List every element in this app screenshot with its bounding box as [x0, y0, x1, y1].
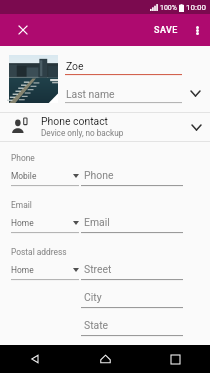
button[interactable]: SAVE — [145, 19, 184, 42]
button[interactable]: Mobile — [11, 168, 79, 187]
staticText: 100% — [160, 4, 177, 12]
staticText: Email — [11, 200, 32, 210]
button[interactable]: Change account — [187, 118, 205, 136]
button[interactable]: Home — [11, 262, 79, 281]
staticText: Postal address — [11, 247, 67, 257]
button[interactable]: Zoe — [65, 59, 182, 76]
button[interactable]: Email — [81, 215, 183, 234]
staticText: Last name — [66, 88, 115, 100]
button[interactable]: Phone contact — [0, 113, 210, 141]
button[interactable]: Phone — [81, 168, 183, 187]
staticText: Phone contact — [41, 115, 109, 127]
button[interactable]: Close — [10, 17, 36, 43]
staticText: Street — [84, 263, 112, 275]
button[interactable]: More options — [184, 17, 210, 43]
staticText: 10:00 — [186, 3, 206, 12]
button[interactable]: Back — [0, 345, 70, 373]
staticText: Email — [84, 216, 110, 228]
button[interactable]: Home — [70, 345, 140, 373]
button[interactable]: State — [81, 318, 183, 337]
staticText: Phone — [84, 169, 114, 181]
staticText: State — [84, 319, 109, 331]
staticText: Mobile — [11, 171, 37, 181]
button[interactable]: Street — [81, 262, 183, 281]
staticText: SAVE — [154, 25, 178, 36]
staticText: Home — [11, 265, 34, 275]
button[interactable]: Last name — [65, 87, 182, 104]
staticText: City — [84, 291, 102, 303]
button[interactable]: Recent apps — [140, 345, 210, 373]
button[interactable]: Expand name fields — [186, 84, 204, 102]
staticText: Phone — [11, 153, 35, 163]
button[interactable]: Home — [11, 215, 79, 234]
staticText: Zoe — [66, 60, 84, 72]
button[interactable]: Contact photo — [9, 55, 58, 103]
button[interactable]: City — [81, 290, 183, 309]
staticText: Home — [11, 218, 34, 228]
staticText: Device only, no backup — [41, 128, 124, 138]
